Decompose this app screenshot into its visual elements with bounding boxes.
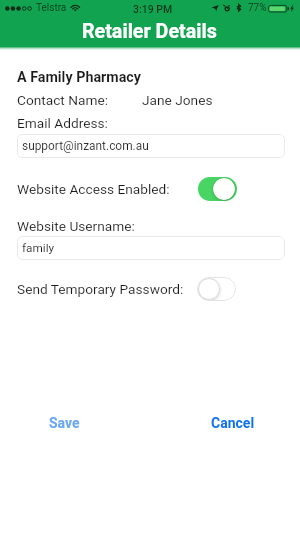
button[interactable]: family [17,236,285,260]
staticText: Retailer Details [82,20,217,43]
button[interactable]: Send Temporary Password toggle, off [197,277,236,301]
staticText: Contact Name: [17,92,109,108]
staticText: 77% [248,2,267,14]
staticText: Jane Jones [142,92,213,108]
staticText: A Family Pharmacy [17,69,141,86]
button[interactable]: Cancel [186,410,267,444]
staticText: family [22,241,55,255]
staticText: Save [49,415,80,431]
button[interactable]: Save [24,410,105,444]
button[interactable]: support@inzant.com.au [17,134,285,158]
staticText: support@inzant.com.au [22,139,149,153]
staticText: Email Address: [17,115,108,131]
staticText: Website Username: [17,218,135,234]
staticText: Website Access Enabled: [17,181,170,197]
staticText: Cancel [211,415,255,431]
staticText: 3:19 PM [133,3,173,15]
staticText: Send Temporary Password: [17,281,184,297]
staticText: Telstra [36,2,67,14]
button[interactable]: Website Access Enabled toggle, on [198,177,237,201]
